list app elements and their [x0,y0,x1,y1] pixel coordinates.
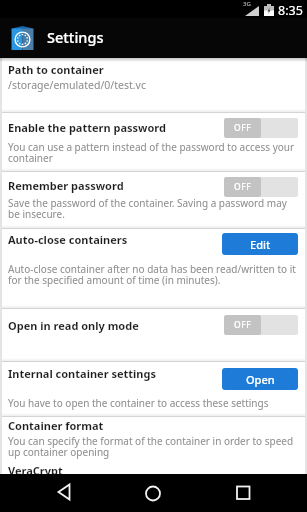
button[interactable] [2,308,305,361]
staticText: OFF [234,122,252,134]
staticText: 8:35 [278,2,303,19]
staticText: Auto-close container after no data has b… [8,262,296,276]
button[interactable]: Edit [222,233,298,255]
staticText: Internal container settings [8,366,156,381]
staticText: You can specify the format of the contai… [8,434,294,448]
staticText: 3G [243,0,251,8]
button[interactable]: OFF [224,315,298,335]
staticText: Container format [8,418,104,433]
staticText: Edit [250,237,271,252]
staticText: You can use a pattern instead of the pas… [8,140,295,154]
staticText: You have to open the container to access… [8,396,269,410]
staticText: Open in read only mode [8,318,139,333]
staticText: Enable the pattern password [8,120,167,135]
button[interactable] [2,112,305,171]
button[interactable]: Settings [0,18,307,58]
staticText: VeraCrypt [8,463,63,478]
button[interactable]: OFF [224,118,298,138]
button[interactable]: Open [222,368,298,390]
button[interactable] [2,228,305,308]
button[interactable] [2,416,305,474]
button[interactable] [136,476,170,510]
staticText: Settings [47,27,104,47]
staticText: up container opening [8,445,110,459]
button[interactable] [226,476,260,510]
staticText: Remember password [8,178,124,193]
button[interactable]: OFF [224,177,298,197]
staticText: OFF [234,319,252,331]
button[interactable] [47,476,83,510]
staticText: OFF [234,181,252,193]
staticText: Open [246,372,275,387]
staticText: Path to container [8,62,104,77]
button[interactable] [2,171,305,228]
staticText: Auto-close containers [8,232,128,247]
button[interactable] [2,58,305,112]
staticText: /storage/emulated/0/test.vc [8,78,146,92]
button[interactable] [2,361,305,416]
staticText: container [8,151,53,165]
staticText: be insecure. [8,207,65,221]
staticText: Save the password of the container. Savi… [8,196,287,210]
staticText: for the specified amount of time (in min… [8,273,221,287]
